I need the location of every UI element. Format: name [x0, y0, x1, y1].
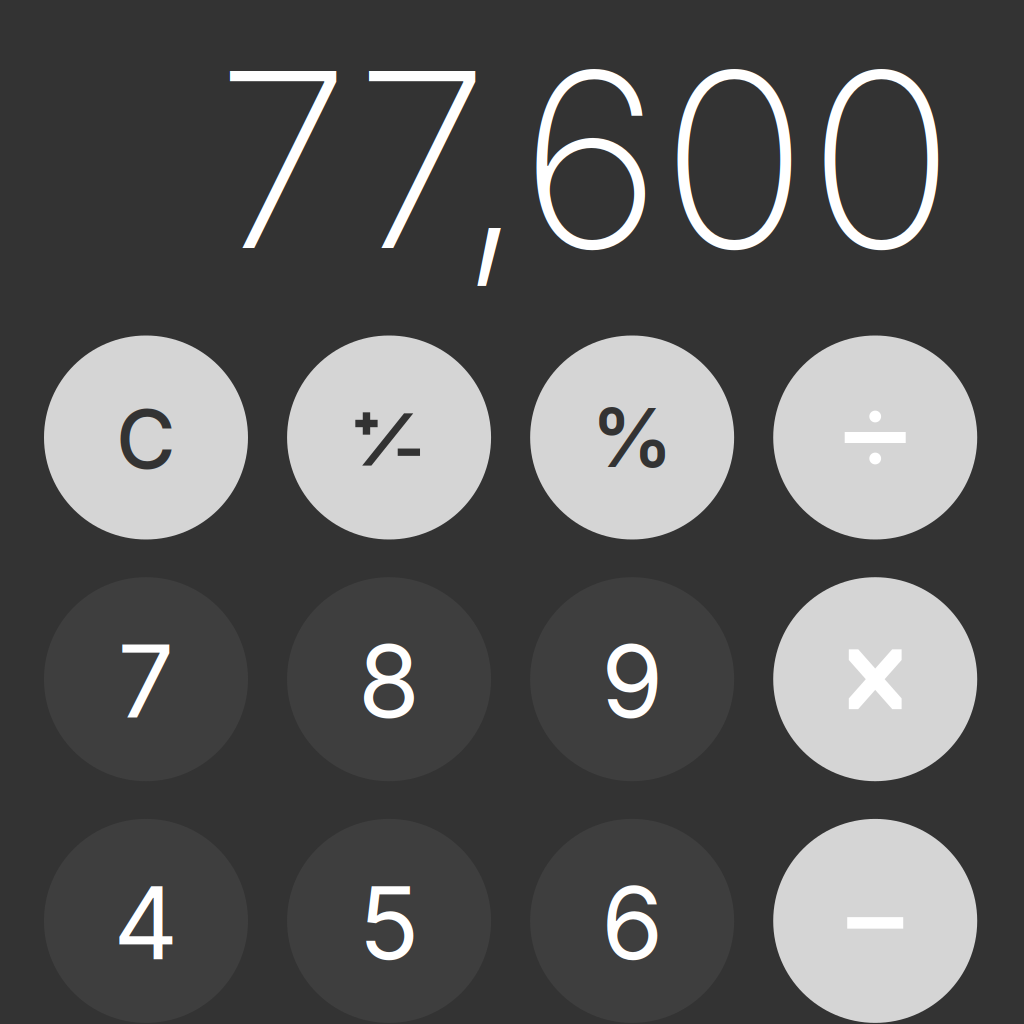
button[interactable]: Plus minus [287, 335, 491, 539]
button[interactable]: C [44, 335, 248, 539]
button[interactable]: 5 [287, 819, 491, 1023]
button[interactable]: 6 [530, 819, 734, 1023]
staticText: C [116, 390, 176, 488]
button[interactable]: Divide [773, 335, 977, 539]
staticText: 9 [601, 621, 663, 742]
button[interactable]: 8 [287, 577, 491, 781]
staticText: 6 [601, 862, 663, 983]
staticText: 8 [358, 621, 420, 742]
staticText: 4 [113, 862, 178, 983]
button[interactable]: 4 [44, 819, 248, 1023]
button[interactable]: 7 [44, 577, 248, 781]
button[interactable]: Multiply [773, 577, 977, 781]
staticText: 7 [117, 621, 174, 742]
button[interactable]: Minus [773, 819, 977, 1023]
button[interactable]: 9 [530, 577, 734, 781]
staticText: 5 [359, 862, 420, 983]
button[interactable]: % [530, 335, 734, 539]
staticText: 77,600 [216, 13, 955, 307]
staticText: % [591, 388, 673, 487]
